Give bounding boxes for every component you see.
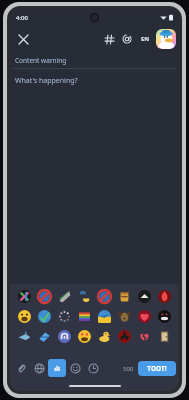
button[interactable]: Close [13, 29, 33, 49]
button[interactable]: Emoji [56, 308, 73, 325]
button[interactable]: Emoji [16, 328, 33, 345]
button[interactable]: Emoji [36, 288, 53, 305]
button[interactable]: Attach media [12, 359, 30, 377]
button[interactable]: Emoji [56, 288, 73, 305]
staticText: What's happening? [15, 76, 78, 86]
button[interactable]: Emoji [96, 308, 113, 325]
button[interactable]: Emoji [76, 308, 93, 325]
button[interactable]: Emoji [116, 328, 133, 345]
button[interactable]: TOOT! [138, 361, 176, 376]
button[interactable]: EN [136, 30, 154, 48]
button[interactable]: Content warning [10, 52, 179, 68]
button[interactable]: Emoji [76, 288, 93, 305]
button[interactable]: Emoji [136, 328, 153, 345]
button[interactable]: Emoji [136, 288, 153, 305]
button[interactable]: Emoji [116, 288, 133, 305]
button[interactable]: Emoji [16, 288, 33, 305]
button[interactable]: Emoji [116, 308, 133, 325]
button[interactable]: Emoji [96, 328, 113, 345]
staticText: 4:00 [16, 14, 28, 22]
button[interactable]: Emoji [36, 308, 53, 325]
button[interactable]: Emoji [136, 308, 153, 325]
button[interactable]: Mention [118, 30, 136, 48]
button[interactable]: Emoji [56, 328, 73, 345]
button[interactable]: Emoji [156, 328, 173, 345]
button[interactable]: Emoji [96, 288, 113, 305]
button[interactable]: Emoji [36, 328, 53, 345]
button[interactable]: Poll [48, 359, 66, 377]
button[interactable]: Profile [156, 29, 176, 49]
button[interactable]: Visibility [30, 359, 48, 377]
button[interactable]: Emoji [156, 288, 173, 305]
staticText: Content warning [15, 56, 67, 65]
button[interactable]: Emoji [76, 328, 93, 345]
button[interactable]: Emoji [16, 308, 33, 325]
button[interactable]: Emoji [66, 359, 84, 377]
button[interactable]: Schedule [84, 359, 102, 377]
button[interactable]: Emoji [156, 308, 173, 325]
button[interactable]: Hashtag [100, 30, 118, 48]
staticText: 500 [123, 365, 134, 373]
staticText: TOOT! [147, 364, 167, 373]
staticText: EN [141, 35, 150, 43]
button[interactable]: What's happening? [10, 71, 179, 284]
